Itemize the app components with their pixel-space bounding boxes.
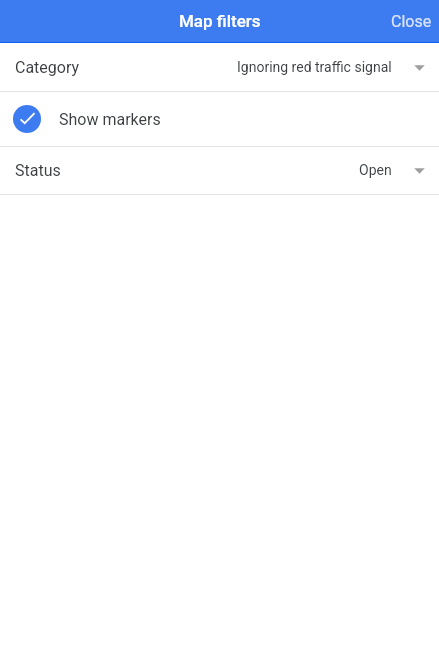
staticText: Close bbox=[391, 12, 432, 31]
other: Open dropdown bbox=[414, 166, 425, 174]
button[interactable]: Category bbox=[0, 43, 439, 91]
button[interactable]: Close bbox=[384, 4, 439, 39]
button[interactable]: Status bbox=[0, 147, 439, 194]
staticText: Open bbox=[359, 162, 392, 178]
staticText: Ignoring red traffic signal bbox=[237, 59, 392, 75]
other: Open dropdown bbox=[414, 63, 425, 71]
staticText: Show markers bbox=[59, 110, 161, 129]
button[interactable]: Show markers, checked bbox=[0, 92, 439, 146]
staticText: Map filters bbox=[179, 11, 261, 31]
staticText: Status bbox=[15, 161, 61, 180]
staticText: Category bbox=[15, 58, 80, 77]
other: Show markers, checked bbox=[13, 105, 41, 133]
